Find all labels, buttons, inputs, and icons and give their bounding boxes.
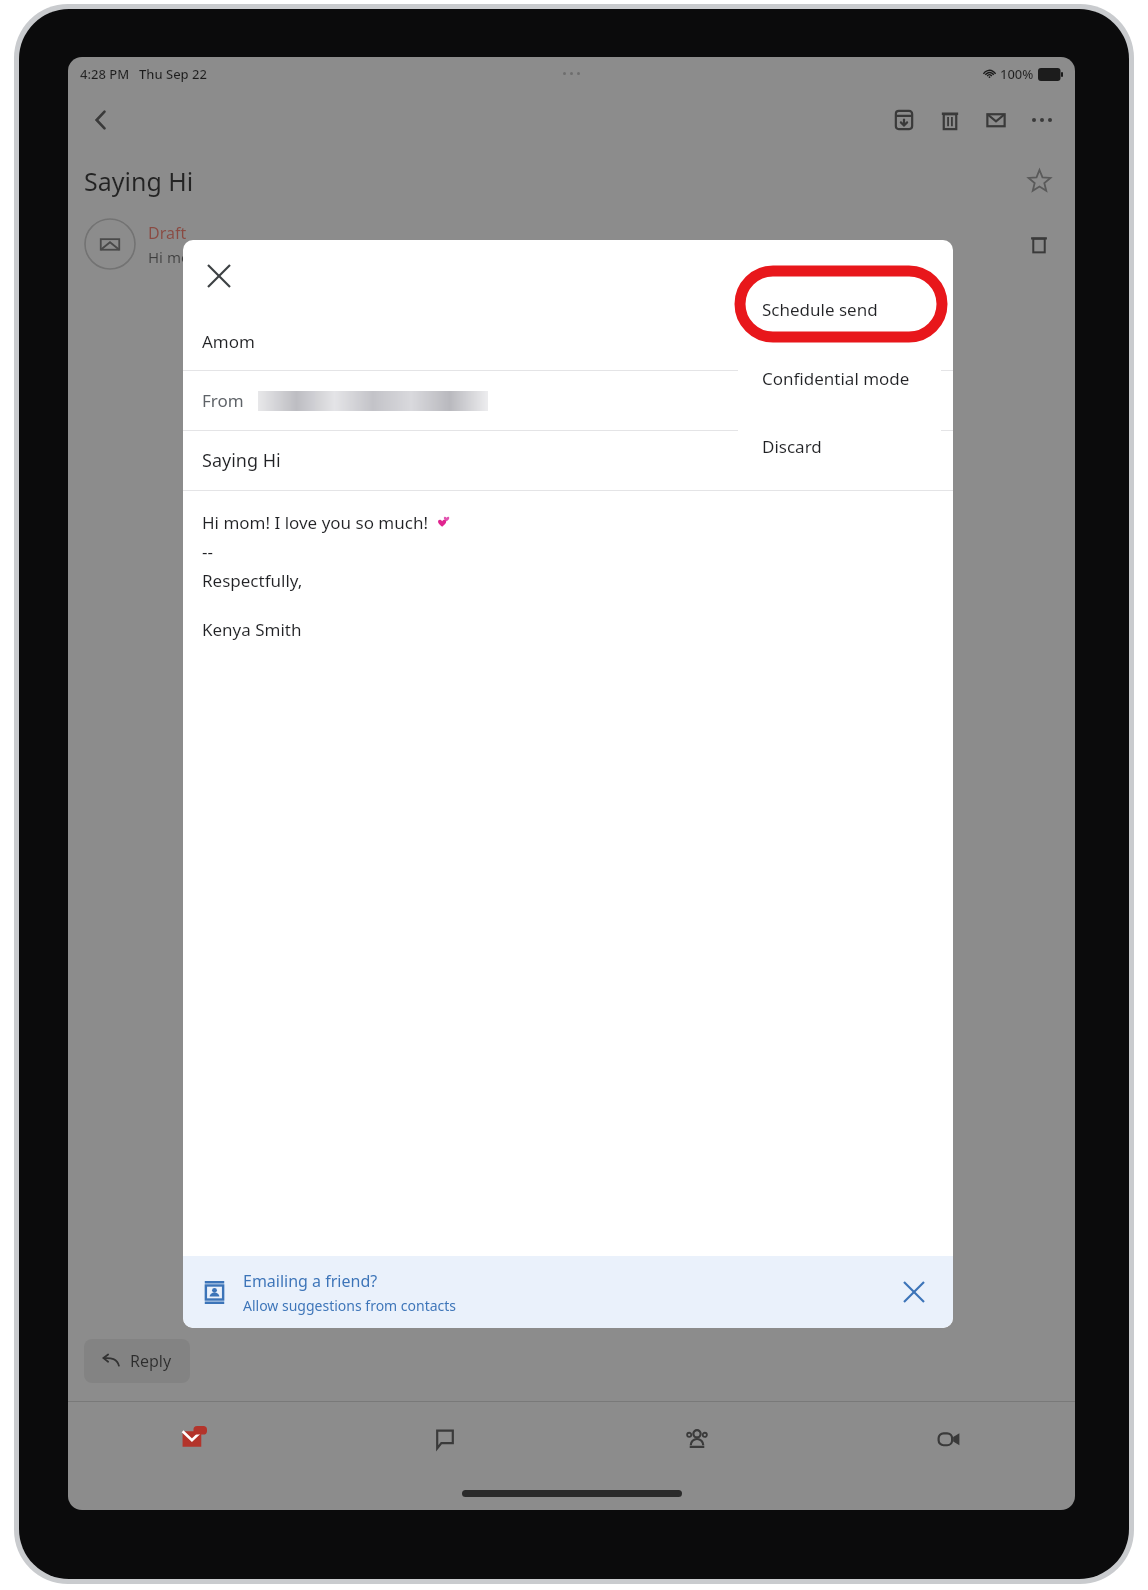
staticText: Amom xyxy=(202,330,255,353)
staticText: Respectfully, xyxy=(202,569,303,592)
staticText: Discard xyxy=(762,435,822,458)
staticText: Allow suggestions from contacts xyxy=(243,1296,457,1315)
button[interactable]: Confidential mode xyxy=(738,344,941,413)
staticText: Saying Hi xyxy=(202,448,281,473)
button[interactable]: Emailing a friend? xyxy=(183,1256,953,1328)
staticText: Reply xyxy=(130,1350,172,1372)
staticText: 100% xyxy=(1000,65,1034,83)
staticText: Hi mom! I love you so much! xyxy=(202,511,428,534)
button[interactable]: Archive xyxy=(881,97,927,143)
button[interactable]: Mail xyxy=(68,1402,319,1476)
button[interactable]: Mark unread xyxy=(973,97,1019,143)
button[interactable]: Discard draft xyxy=(1019,224,1059,264)
button[interactable]: Discard xyxy=(738,413,941,479)
button[interactable]: Delete xyxy=(927,97,973,143)
staticText: Confidential mode xyxy=(762,367,910,390)
staticText: 4:28 PM xyxy=(80,65,130,83)
staticText: Hi mom! I love you so much! xyxy=(148,247,348,267)
button[interactable]: More options xyxy=(1019,97,1065,143)
button[interactable]: Star xyxy=(1019,161,1059,201)
button[interactable]: Reply xyxy=(84,1339,190,1383)
staticText: From xyxy=(202,389,244,412)
staticText: Draft xyxy=(148,222,187,244)
button[interactable]: Back xyxy=(78,97,124,143)
button[interactable]: Meet xyxy=(823,1402,1075,1476)
button[interactable]: Schedule send xyxy=(738,275,941,344)
staticText: -- xyxy=(202,540,213,563)
staticText: Schedule send xyxy=(762,298,878,321)
button[interactable]: Chat xyxy=(319,1402,571,1476)
button[interactable]: Spaces xyxy=(571,1402,823,1476)
staticText: Emailing a friend? xyxy=(243,1270,378,1292)
button[interactable]: Close xyxy=(191,248,247,304)
staticText: Kenya Smith xyxy=(202,618,302,641)
button[interactable]: Dismiss xyxy=(893,1271,935,1313)
staticText: Thu Sep 22 xyxy=(139,65,207,83)
staticText: Saying Hi xyxy=(84,164,194,198)
